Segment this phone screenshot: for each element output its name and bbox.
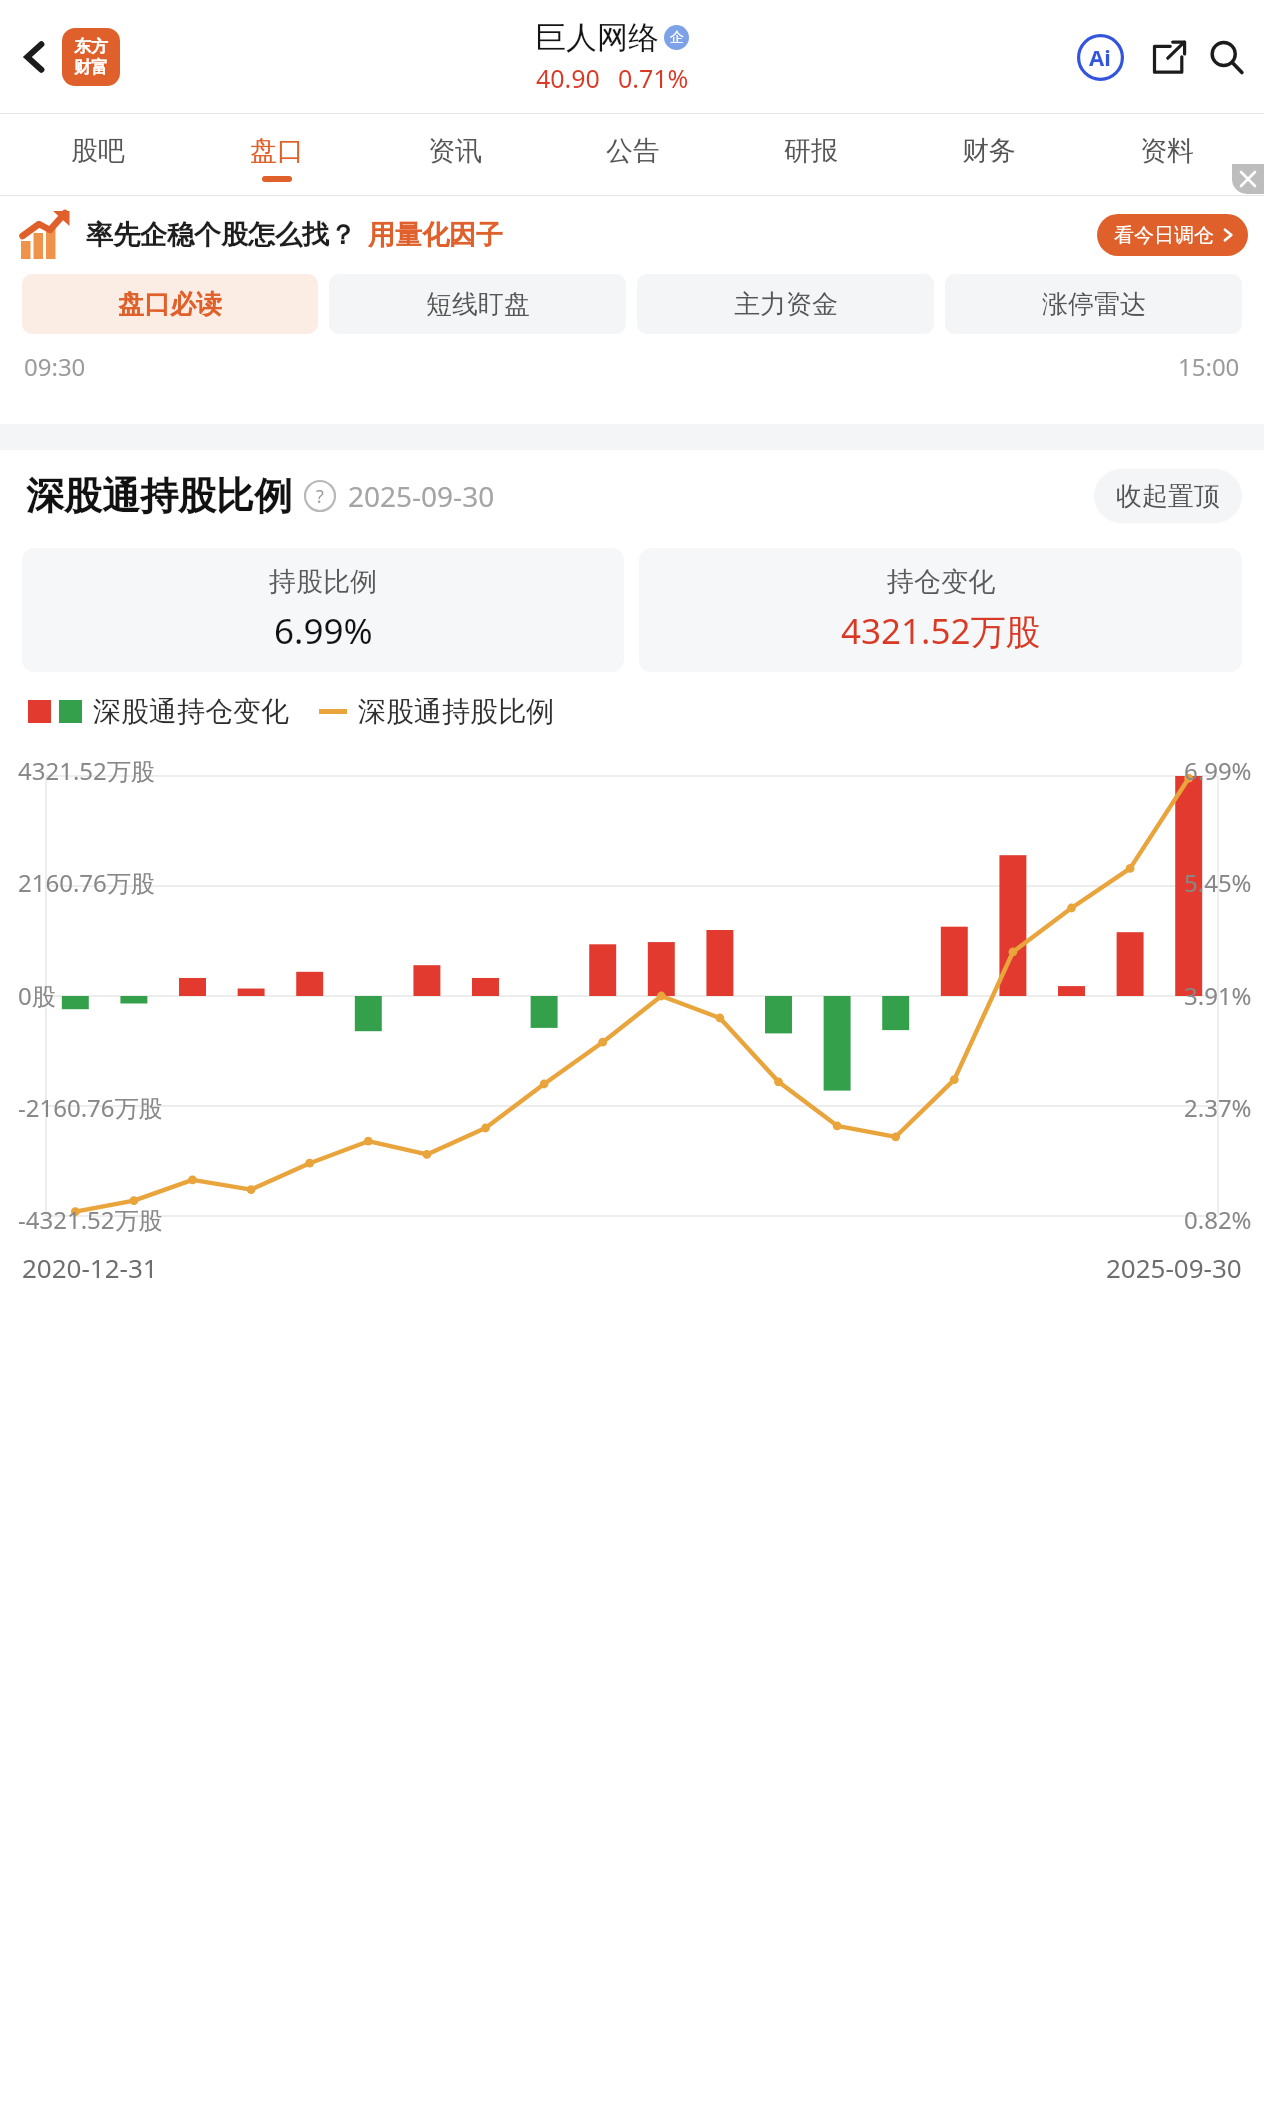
button[interactable]: Back bbox=[6, 28, 64, 86]
button[interactable]: 持股比例 bbox=[22, 548, 624, 672]
staticText: 短线盯盘 bbox=[426, 288, 530, 321]
staticText: 率先企稳个股怎么找？ bbox=[86, 218, 356, 252]
button[interactable]: 公告 bbox=[544, 114, 722, 195]
staticText: 主力资金 bbox=[734, 288, 838, 321]
staticText: 用量化因子 bbox=[368, 218, 503, 252]
staticText: 财务 bbox=[962, 134, 1016, 168]
button[interactable]: 短线盯盘 bbox=[329, 274, 626, 334]
staticText: 4321.52万股 bbox=[841, 607, 1041, 655]
staticText: ? bbox=[316, 484, 324, 509]
staticText: 2025-09-30 bbox=[348, 477, 495, 515]
staticText: 2160.76万股 bbox=[18, 866, 155, 899]
button[interactable]: 看今日调仓 bbox=[1097, 214, 1248, 256]
button[interactable]: 主力资金 bbox=[637, 274, 934, 334]
staticText: 公告 bbox=[606, 134, 660, 168]
button[interactable]: East Money bbox=[62, 28, 120, 86]
staticText: 看今日调仓 bbox=[1114, 223, 1214, 248]
button[interactable]: 持仓变化 bbox=[639, 548, 1242, 672]
staticText: 财富 bbox=[74, 57, 108, 78]
staticText: 巨人网络 bbox=[535, 18, 659, 57]
staticText: 15:00 bbox=[1178, 350, 1240, 383]
staticText: 涨停雷达 bbox=[1042, 288, 1146, 321]
staticText: 深股通持股比例 bbox=[26, 472, 292, 520]
button[interactable]: 盘口必读 bbox=[22, 274, 318, 334]
staticText: 深股通持仓变化 bbox=[93, 694, 289, 729]
button[interactable]: AI assistant bbox=[1070, 27, 1130, 87]
staticText: 3.91% bbox=[1184, 979, 1252, 1012]
button[interactable]: Close ad bbox=[1232, 164, 1264, 194]
staticText: 09:30 bbox=[24, 350, 86, 383]
staticText: 2020-12-31 bbox=[22, 1250, 158, 1285]
staticText: 40.90 bbox=[536, 61, 600, 95]
staticText: 6.99% bbox=[274, 607, 373, 655]
staticText: 资讯 bbox=[428, 134, 482, 168]
button[interactable]: Search bbox=[1198, 29, 1254, 85]
button[interactable]: 研报 bbox=[722, 114, 900, 195]
staticText: 东方 bbox=[74, 36, 108, 57]
staticText: 收起置顶 bbox=[1116, 480, 1220, 513]
staticText: -2160.76万股 bbox=[18, 1091, 163, 1124]
button[interactable]: 收起置顶 bbox=[1094, 469, 1242, 523]
button[interactable]: 涨停雷达 bbox=[945, 274, 1242, 334]
staticText: 盘口 bbox=[250, 134, 304, 168]
staticText: 研报 bbox=[784, 134, 838, 168]
button[interactable]: Share bbox=[1140, 29, 1196, 85]
staticText: 2025-09-30 bbox=[1106, 1250, 1242, 1285]
staticText: 持仓变化 bbox=[887, 565, 995, 599]
staticText: 资料 bbox=[1140, 134, 1194, 168]
staticText: Ai bbox=[1089, 42, 1111, 72]
staticText: 5.45% bbox=[1184, 866, 1252, 899]
staticText: 0.71% bbox=[618, 61, 689, 95]
staticText: 深股通持股比例 bbox=[358, 694, 554, 729]
staticText: 6.99% bbox=[1184, 754, 1252, 787]
button[interactable]: Help bbox=[304, 480, 336, 512]
staticText: 2.37% bbox=[1184, 1091, 1252, 1124]
staticText: 股吧 bbox=[71, 134, 125, 168]
staticText: 4321.52万股 bbox=[18, 754, 155, 787]
button[interactable]: 股吧 bbox=[8, 114, 187, 195]
staticText: 持股比例 bbox=[269, 565, 377, 599]
button[interactable]: 资讯 bbox=[366, 114, 544, 195]
staticText: 0股 bbox=[18, 979, 56, 1012]
staticText: 0.82% bbox=[1184, 1203, 1252, 1236]
button[interactable]: 资料 bbox=[1078, 114, 1256, 195]
staticText: -4321.52万股 bbox=[18, 1203, 163, 1236]
staticText: 企 bbox=[670, 29, 684, 47]
staticText: 盘口必读 bbox=[118, 288, 222, 321]
button[interactable]: 财务 bbox=[900, 114, 1078, 195]
button[interactable]: 盘口 bbox=[187, 114, 366, 195]
